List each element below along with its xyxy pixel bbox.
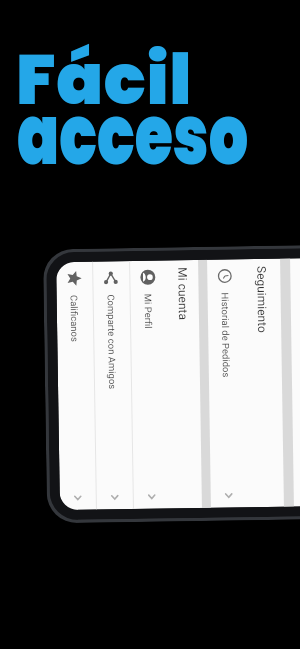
staticText: Fácil [16,32,193,129]
staticText: Mi Perfil [143,294,154,329]
staticText: Calificanos [69,295,80,342]
staticText: Comparte con Amigos [106,294,118,389]
button[interactable]: Seguimiento [243,259,284,507]
staticText: acceso [17,77,249,194]
button[interactable]: Comparte con Amigos [93,261,133,509]
button[interactable]: Calificanos [56,262,96,510]
button[interactable]: Mi Perfil [130,260,170,509]
staticText: Seguimiento [254,266,269,333]
button[interactable]: Historial de Pedidos [207,259,247,508]
staticText: Historial de Pedidos [220,292,232,378]
staticText: Mi cuenta [175,267,190,320]
button[interactable]: Mi cuenta [166,260,202,508]
